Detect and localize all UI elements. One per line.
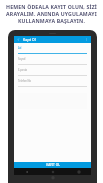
button[interactable]: Back [24,169,29,174]
button[interactable]: More options [84,37,89,42]
staticText: Ad [18,46,22,50]
button[interactable]: KAYIT OL [14,162,91,168]
staticText: HEMEN ÖDEALA KAYIT OLUN, SİZİ [5,3,98,10]
button[interactable]: Telefon No [18,79,87,90]
staticText: Soyad [18,57,26,61]
staticText: KAYIT OL [46,163,60,167]
button[interactable]: Ad [18,46,87,57]
button[interactable]: Home [50,169,55,174]
button[interactable]: Back [16,37,21,42]
button[interactable]: E-posta [18,68,87,79]
staticText: KULLANMAYA BAŞLAYIN. [5,17,98,24]
staticText: Telefon No [18,79,32,83]
staticText: ARAYALIM. ANINDA UYGULAMAYI [5,10,98,17]
staticText: Kayıt Ol [23,37,36,42]
button[interactable]: Recent apps [76,169,81,174]
staticText: E-posta [18,68,28,72]
button[interactable]: Soyad [18,57,87,68]
